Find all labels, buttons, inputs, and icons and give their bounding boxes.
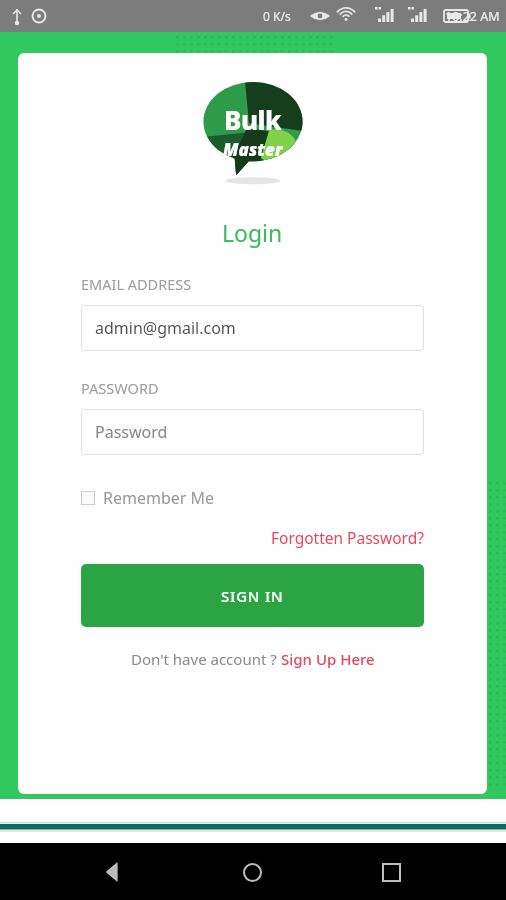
staticText: SIGN IN xyxy=(221,586,284,606)
button[interactable]: Password xyxy=(81,409,424,455)
staticText: PASSWORD xyxy=(81,378,159,398)
button[interactable]: Remember Me xyxy=(81,487,215,509)
staticText: Don't have account ? xyxy=(131,649,281,669)
staticText: Remember Me xyxy=(103,487,215,509)
staticText: Master xyxy=(223,138,283,161)
button[interactable]: SIGN IN xyxy=(81,564,424,627)
staticText: Login xyxy=(222,217,283,248)
button[interactable]: Sign Up Here xyxy=(281,649,375,669)
button[interactable]: Home xyxy=(228,848,276,896)
button[interactable]: Back xyxy=(90,848,138,896)
button[interactable]: admin@gmail.com xyxy=(81,305,424,351)
staticText: Bulk xyxy=(224,102,282,137)
button[interactable]: Forgotten Password? xyxy=(271,525,424,550)
staticText: EMAIL ADDRESS xyxy=(81,274,192,294)
staticText: 10:22 AM xyxy=(445,8,500,25)
staticText: Password xyxy=(95,421,168,443)
button[interactable]: Recent apps xyxy=(367,848,415,896)
staticText: 0 K/s xyxy=(263,8,291,24)
staticText: admin@gmail.com xyxy=(95,317,236,339)
